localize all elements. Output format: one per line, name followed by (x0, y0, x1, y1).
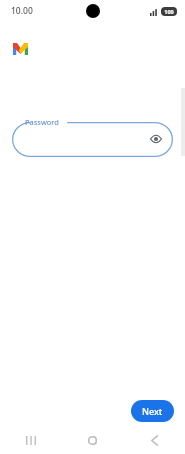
staticText: Password (25, 117, 59, 127)
button[interactable]: Home (61, 426, 123, 454)
button[interactable]: Show password (148, 131, 164, 147)
staticText: Next (142, 405, 163, 417)
button[interactable]: Back (123, 426, 185, 454)
button[interactable]: Recent apps (0, 426, 61, 454)
staticText: 100 (164, 8, 174, 15)
button[interactable]: Next (131, 400, 174, 422)
button[interactable]: Password (12, 117, 173, 157)
staticText: 10.00 (11, 5, 33, 17)
